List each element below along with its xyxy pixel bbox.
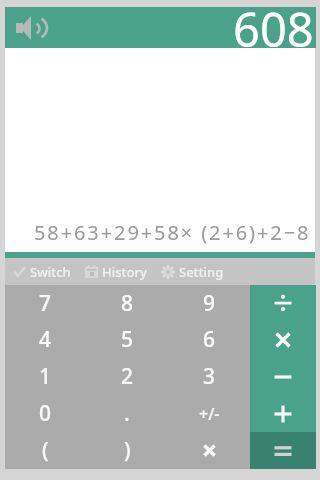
staticText: 0	[39, 399, 52, 428]
button[interactable]: +/-	[168, 395, 250, 432]
button[interactable]	[250, 285, 316, 321]
button[interactable]: 1	[5, 358, 86, 395]
button[interactable]: .	[86, 395, 168, 432]
button[interactable]: 6	[168, 321, 250, 358]
staticText: 7	[39, 289, 52, 318]
button[interactable]: )	[86, 432, 168, 469]
staticText: 608	[233, 0, 314, 61]
button[interactable]: 5	[86, 321, 168, 358]
button[interactable]: 9	[168, 285, 250, 321]
button[interactable]	[5, 7, 53, 48]
staticText: Setting	[179, 263, 224, 281]
button[interactable]: 8	[86, 285, 168, 321]
staticText: 8	[121, 289, 134, 318]
staticText: 1	[39, 362, 52, 391]
staticText: 58+63+29+58× (2+6)+2−8	[34, 219, 311, 246]
button[interactable]: Switch	[5, 258, 77, 285]
button[interactable]	[250, 432, 316, 469]
staticText: .	[124, 399, 130, 428]
staticText: 5	[121, 325, 134, 354]
button[interactable]	[168, 432, 250, 469]
button[interactable]: 7	[5, 285, 86, 321]
staticText: (	[42, 436, 49, 465]
button[interactable]	[250, 321, 316, 358]
staticText: Switch	[30, 263, 71, 281]
button[interactable]: Setting	[153, 258, 229, 285]
button[interactable]: History	[77, 258, 153, 285]
button[interactable]: (	[5, 432, 86, 469]
button[interactable]: 2	[86, 358, 168, 395]
staticText: 6	[203, 325, 216, 354]
button[interactable]: 4	[5, 321, 86, 358]
button[interactable]	[250, 358, 316, 395]
staticText: )	[124, 436, 131, 465]
staticText: 3	[203, 362, 216, 391]
staticText: 4	[39, 325, 52, 354]
staticText: History	[102, 263, 147, 281]
button[interactable]: 0	[5, 395, 86, 432]
staticText: +/-	[199, 403, 220, 425]
staticText: 2	[121, 362, 134, 391]
button[interactable]	[250, 395, 316, 432]
staticText: 9	[203, 289, 216, 318]
button[interactable]: 3	[168, 358, 250, 395]
